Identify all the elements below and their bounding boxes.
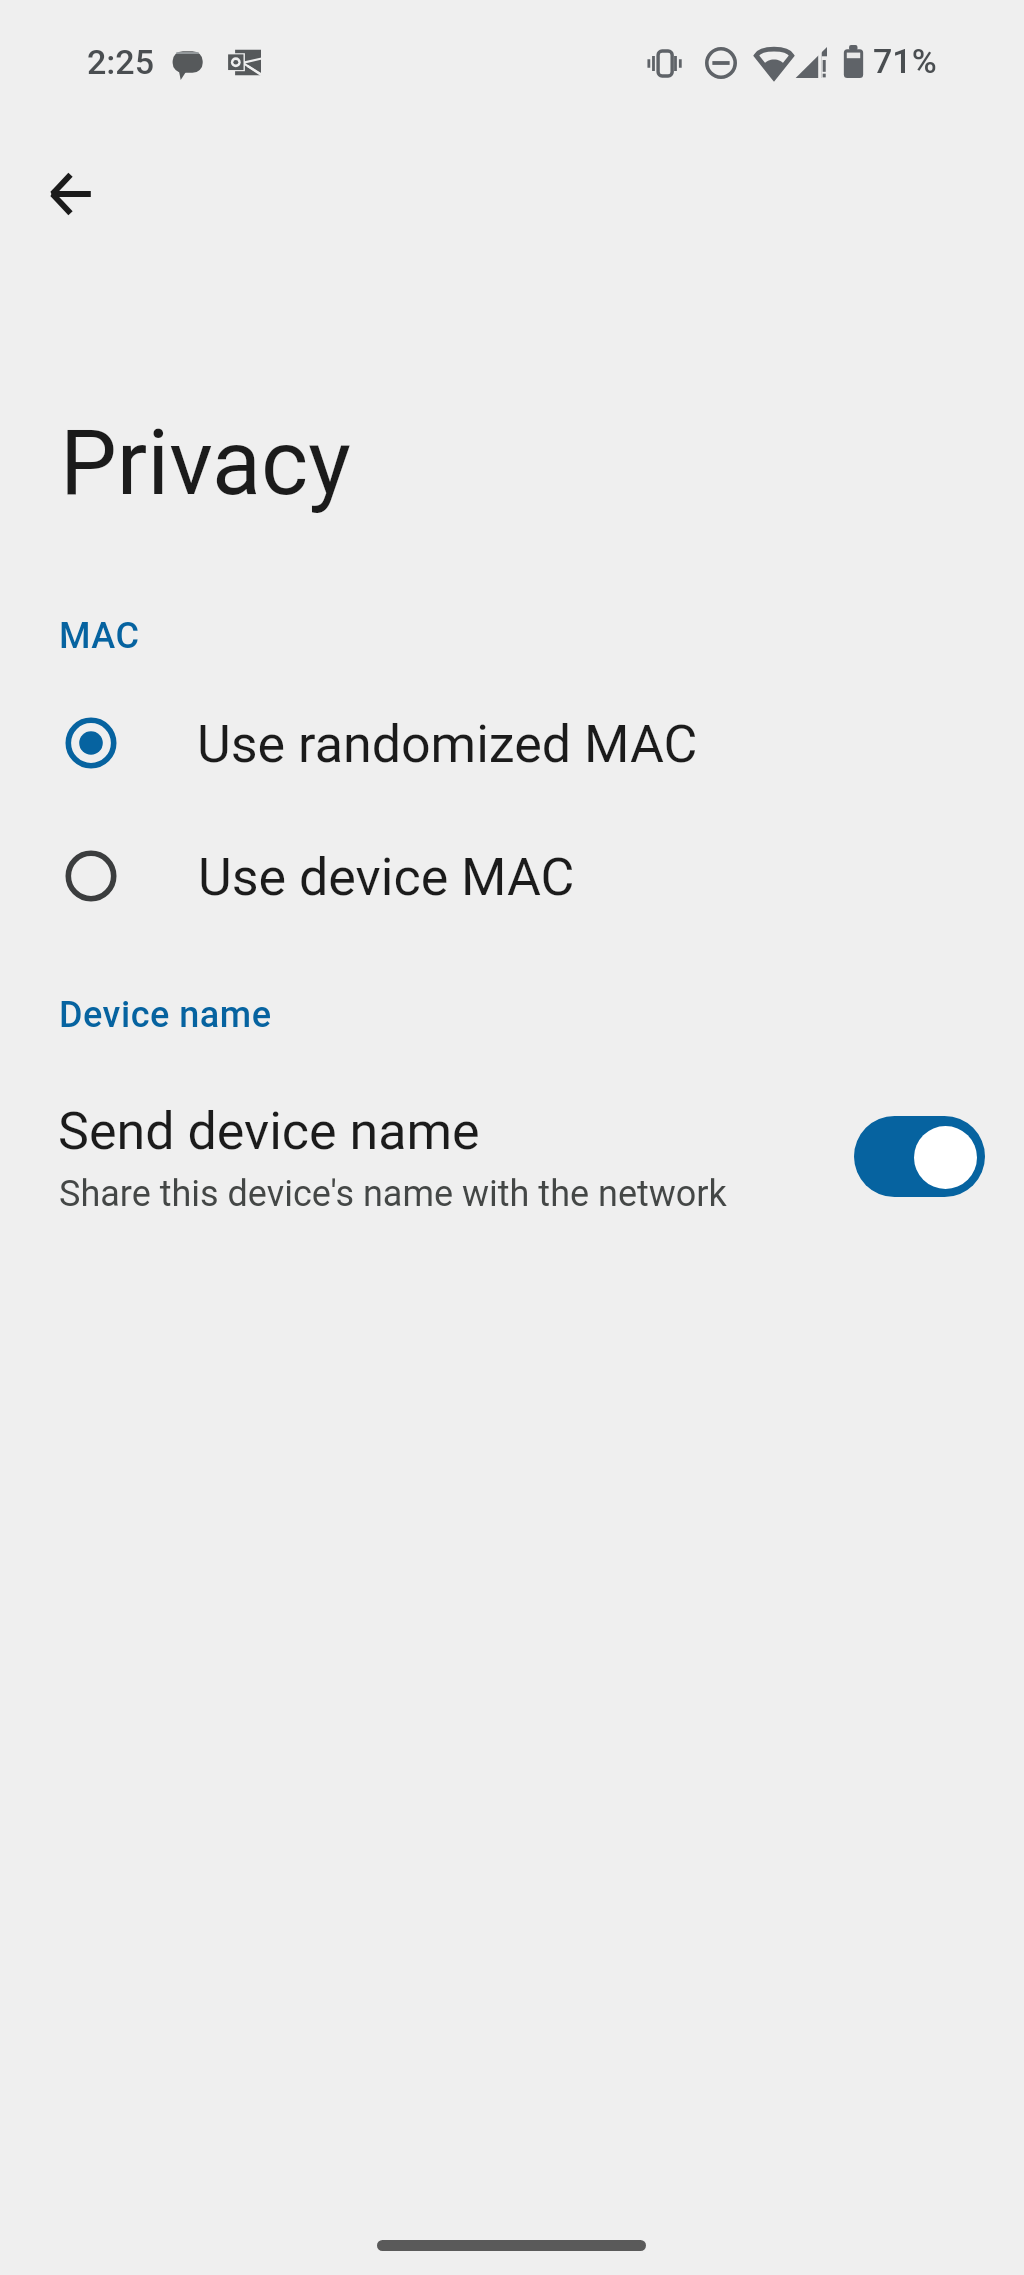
button[interactable]: Send device name [0, 1070, 1024, 1240]
staticText: Use device MAC [198, 847, 575, 908]
button[interactable]: Use device MAC [0, 823, 1024, 933]
staticText: Send device name [58, 1101, 480, 1162]
staticText: Privacy [60, 411, 351, 516]
button[interactable]: Navigate up [27, 150, 115, 238]
staticText: Use randomized MAC [197, 714, 698, 775]
staticText: Share this device's name with the networ… [59, 1173, 727, 1215]
button[interactable]: Use randomized MAC [0, 690, 1024, 800]
staticText: MAC [59, 615, 140, 657]
staticText: 71% [873, 41, 937, 81]
staticText: Device name [59, 994, 272, 1036]
staticText: 2:25 [87, 42, 154, 82]
